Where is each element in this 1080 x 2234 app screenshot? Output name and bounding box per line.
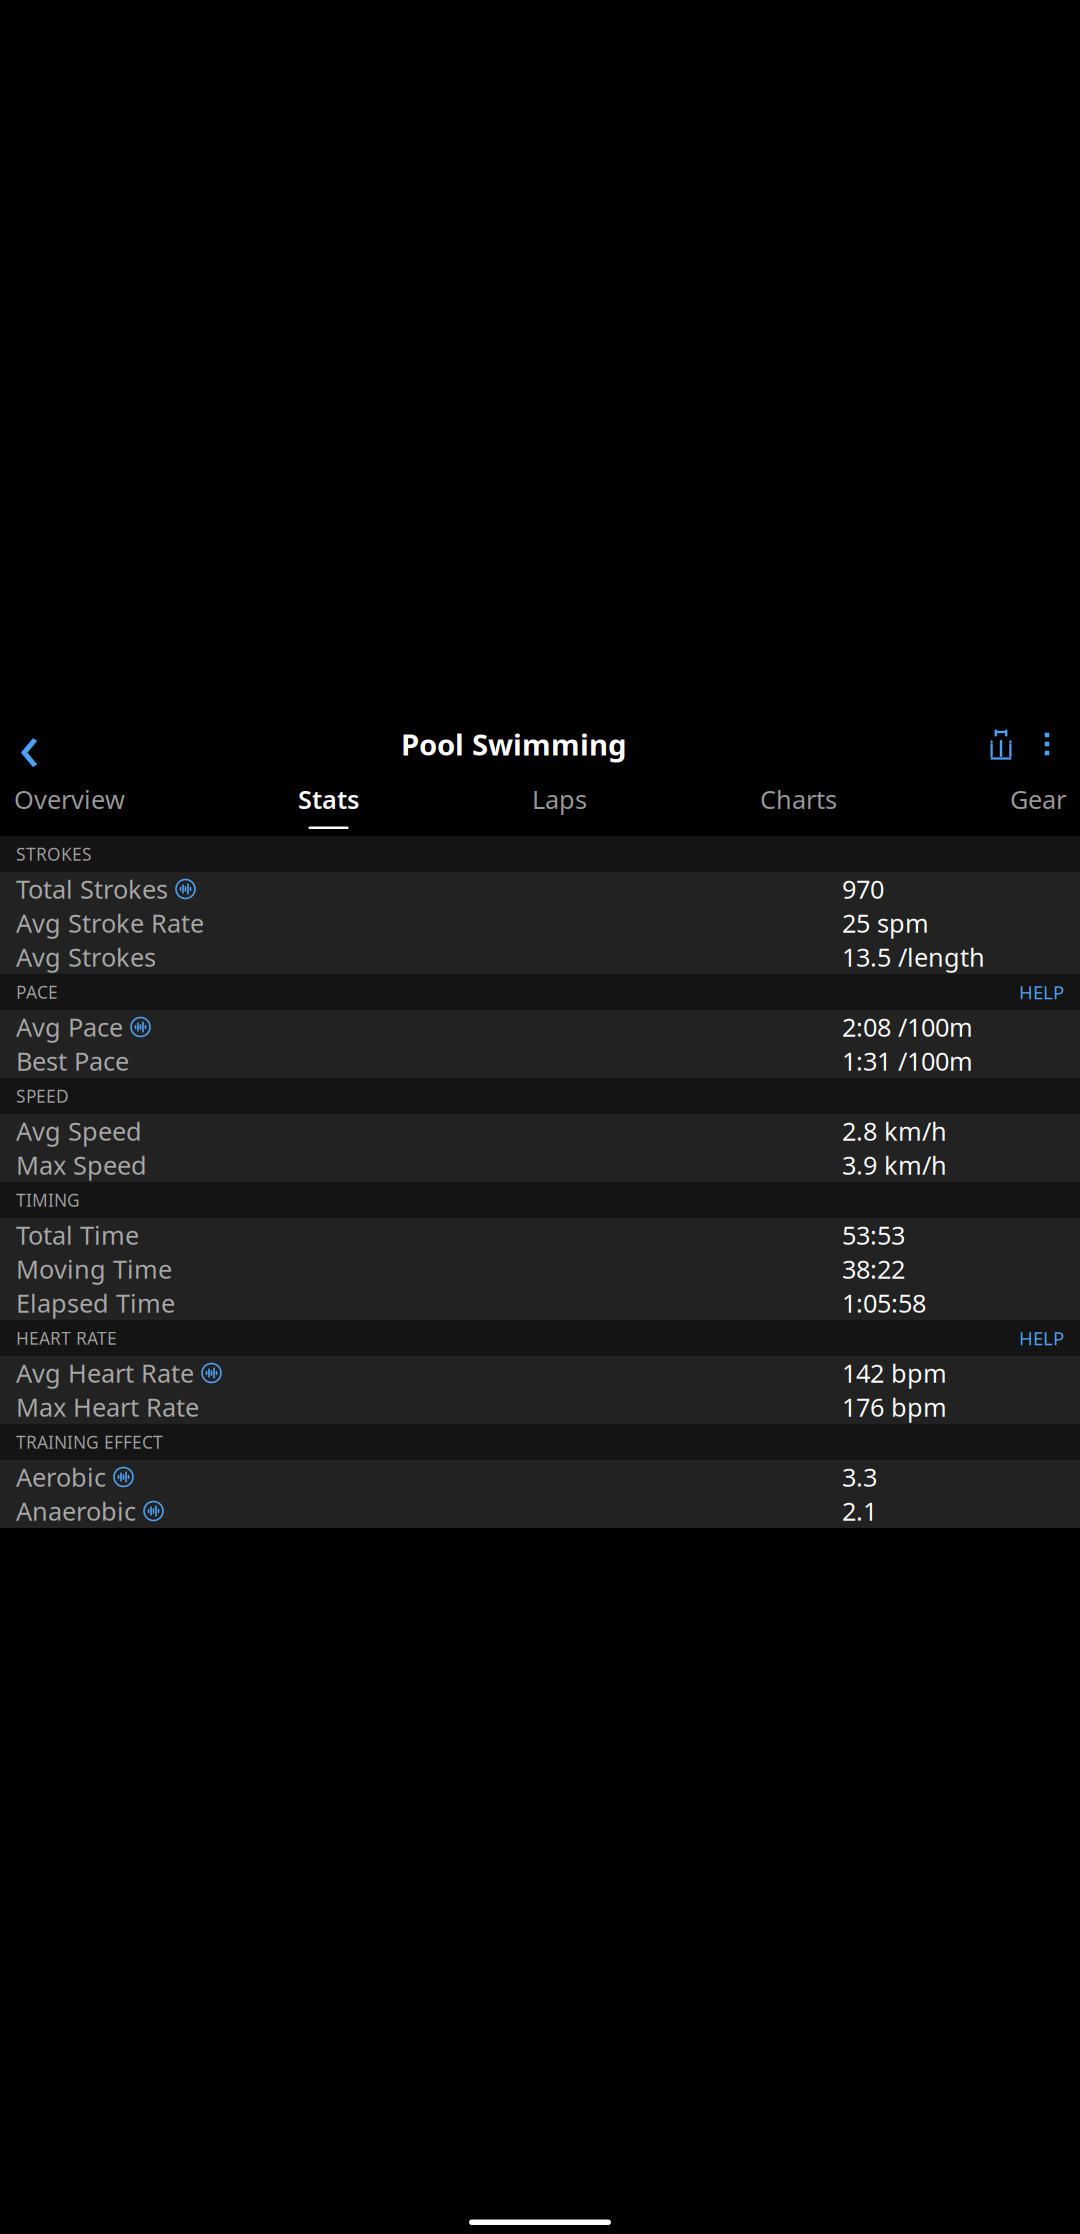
staticText: Total Strokes [16,872,168,906]
staticText: 1:05:58 [842,1286,926,1320]
staticText: Avg Pace [16,1010,123,1044]
staticText: Stats [298,782,359,816]
staticText: Laps [532,782,587,816]
staticText: TRAINING EFFECT [16,1430,163,1453]
button[interactable]: Share [978,716,1024,772]
staticText: Charts [760,782,837,816]
staticText: Total Time [16,1218,139,1252]
staticText: 3.9 km/h [842,1148,947,1182]
staticText: Moving Time [16,1252,172,1286]
button[interactable]: Total Time [0,1218,1080,1252]
staticText: ‹ [18,698,39,790]
staticText: 2.8 km/h [842,1114,947,1148]
button[interactable]: Laps [532,772,587,836]
staticText: 970 [842,872,884,906]
button[interactable]: HELP [1019,1326,1064,1350]
staticText: Pool Swimming [401,724,627,763]
button[interactable]: Stats [298,772,359,836]
button[interactable]: Overview [14,772,125,836]
button[interactable]: Avg Speed [0,1114,1080,1148]
staticText: 176 bpm [842,1390,947,1424]
button[interactable]: Back [0,716,50,772]
staticText: TIMING [16,1188,80,1211]
button[interactable]: Total Strokes [0,872,1080,906]
staticText: HELP [1019,1326,1064,1350]
staticText: HEART RATE [16,1326,117,1349]
staticText: Best Pace [16,1044,129,1078]
button[interactable]: Avg Heart Rate [0,1356,1080,1390]
button[interactable]: Gear [1010,772,1066,836]
button[interactable]: Best Pace [0,1044,1080,1078]
staticText: 13.5 /length [842,940,985,974]
staticText: Avg Stroke Rate [16,906,204,940]
staticText: 3.3 [842,1460,877,1494]
button[interactable]: HELP [1019,980,1064,1004]
staticText: Max Heart Rate [16,1390,199,1424]
staticText: PACE [16,980,58,1003]
button[interactable]: Charts [760,772,837,836]
staticText: Aerobic [16,1460,106,1494]
staticText: Max Speed [16,1148,147,1182]
button[interactable]: Moving Time [0,1252,1080,1286]
staticText: Gear [1010,782,1066,816]
staticText: SPEED [16,1084,69,1107]
staticText: Elapsed Time [16,1286,175,1320]
staticText: 1:31 /100m [842,1044,973,1078]
button[interactable]: Avg Pace [0,1010,1080,1044]
staticText: 25 spm [842,906,929,940]
staticText: Overview [14,782,125,816]
staticText: Anaerobic [16,1494,136,1528]
button[interactable]: Aerobic [0,1460,1080,1494]
staticText: 142 bpm [842,1356,947,1390]
staticText: Avg Heart Rate [16,1356,194,1390]
button[interactable]: More options [1024,716,1080,772]
staticText: STROKES [16,842,92,865]
staticText: HELP [1019,980,1064,1004]
staticText: 2.1 [842,1494,877,1528]
button[interactable]: Avg Strokes [0,940,1080,974]
button[interactable]: Anaerobic [0,1494,1080,1528]
staticText: 38:22 [842,1252,905,1286]
staticText: Avg Strokes [16,940,156,974]
staticText: 2:08 /100m [842,1010,973,1044]
staticText: 53:53 [842,1218,905,1252]
button[interactable]: Max Heart Rate [0,1390,1080,1424]
staticText: Avg Speed [16,1114,142,1148]
button[interactable]: Max Speed [0,1148,1080,1182]
button[interactable]: Avg Stroke Rate [0,906,1080,940]
button[interactable]: Elapsed Time [0,1286,1080,1320]
